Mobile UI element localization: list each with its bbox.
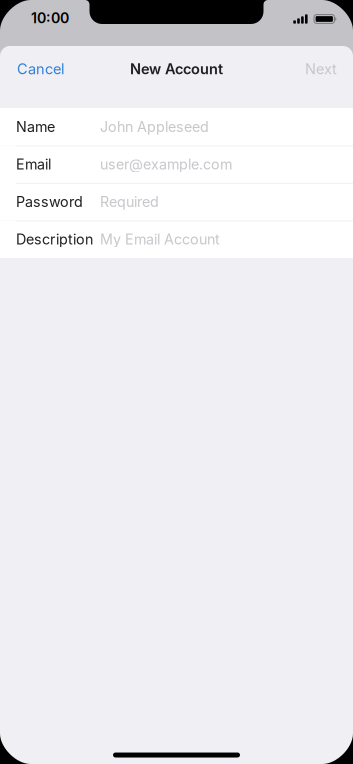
- staticText: Email: [16, 156, 51, 173]
- staticText: Password: [16, 193, 83, 210]
- button[interactable]: Description: [0, 220, 353, 258]
- staticText: Description: [16, 231, 93, 248]
- button[interactable]: Password: [0, 183, 353, 220]
- staticText: 10:00: [31, 9, 69, 26]
- staticText: Required: [100, 193, 159, 210]
- button[interactable]: Email: [0, 145, 353, 183]
- button[interactable]: Next: [293, 47, 353, 91]
- staticText: user@example.com: [100, 156, 232, 173]
- button[interactable]: Cancel: [0, 47, 77, 91]
- staticText: New Account: [130, 60, 223, 78]
- staticText: Name: [16, 118, 55, 135]
- staticText: Cancel: [17, 60, 65, 78]
- button[interactable]: Name: [0, 108, 353, 145]
- staticText: My Email Account: [100, 231, 220, 248]
- staticText: John Appleseed: [100, 118, 209, 135]
- staticText: Next: [305, 60, 337, 78]
